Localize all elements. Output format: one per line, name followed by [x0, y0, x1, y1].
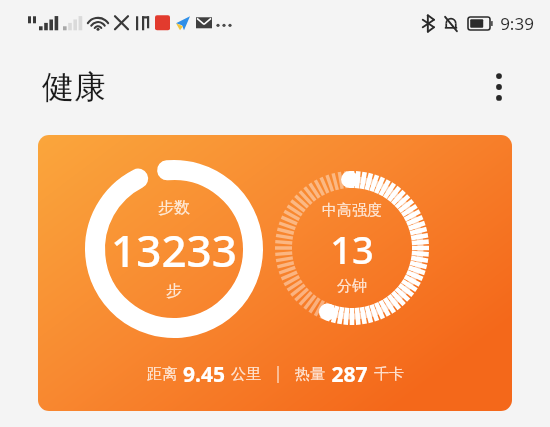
staticText: 13 [330, 223, 374, 275]
button[interactable]: More options [478, 66, 520, 108]
staticText: 分钟 [337, 277, 367, 296]
staticText: 千卡 [374, 365, 404, 384]
staticText: 健康 [42, 67, 106, 107]
button[interactable]: 步数 [38, 135, 512, 411]
staticText: 距离 [147, 365, 177, 384]
staticText: 公里 [231, 365, 261, 384]
staticText: 步 [166, 281, 182, 301]
staticText: 9:39 [500, 12, 534, 35]
staticText: 13233 [111, 220, 237, 280]
staticText: 9.45 [183, 360, 225, 389]
staticText: 中高强度 [322, 201, 382, 220]
staticText: 步数 [158, 198, 190, 218]
staticText: 热量 [295, 365, 325, 384]
staticText: 287 [331, 360, 368, 389]
